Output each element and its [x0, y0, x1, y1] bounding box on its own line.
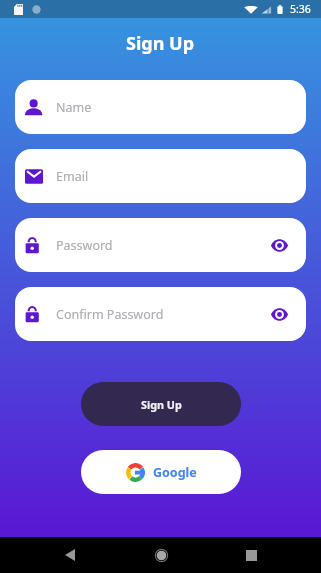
button[interactable]: Confirm Password — [15, 287, 306, 341]
staticText: Password — [56, 237, 113, 254]
button[interactable]: Home — [141, 537, 181, 573]
button[interactable]: Password — [15, 218, 306, 272]
button[interactable]: Email — [15, 149, 306, 203]
staticText: Email — [56, 168, 89, 185]
staticText: Google — [153, 464, 197, 481]
button[interactable]: Name — [15, 80, 306, 134]
staticText: 5:36 — [290, 2, 311, 16]
button[interactable]: Toggle password visibility — [260, 295, 298, 333]
button[interactable]: Back — [50, 537, 90, 573]
button[interactable]: Recents — [231, 537, 271, 573]
staticText: Sign Up — [126, 31, 195, 56]
button[interactable]: Sign Up — [81, 382, 241, 426]
button[interactable]: Toggle password visibility — [260, 226, 298, 264]
staticText: Confirm Password — [56, 306, 164, 323]
button[interactable]: Google — [81, 450, 241, 494]
staticText: Name — [56, 99, 92, 116]
staticText: Sign Up — [141, 397, 182, 412]
